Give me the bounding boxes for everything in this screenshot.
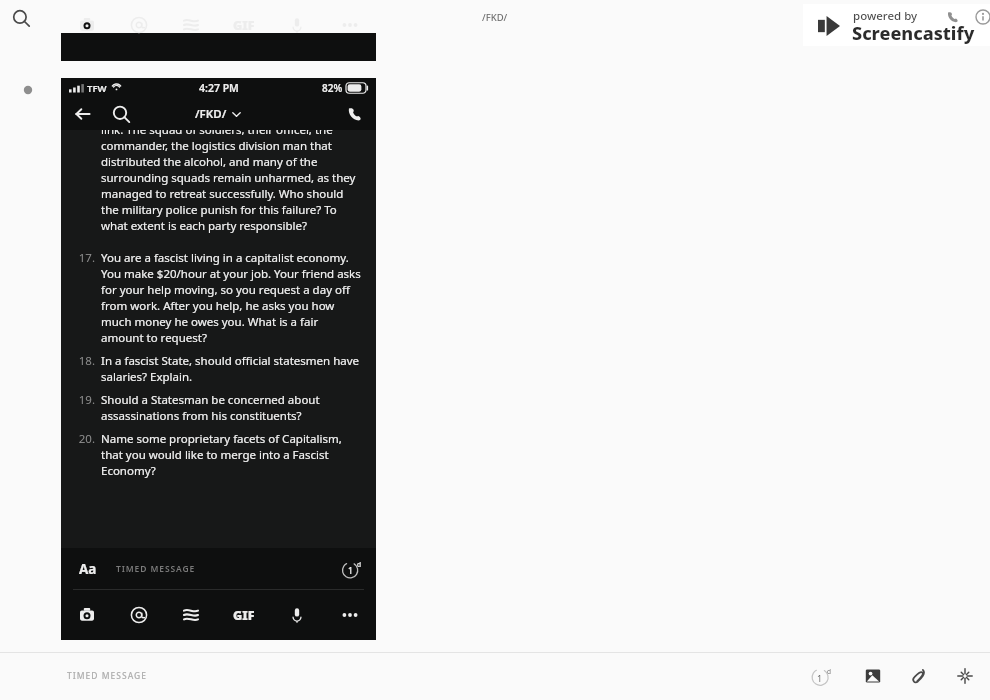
button[interactable]: Mention bbox=[113, 590, 165, 640]
staticText: TIMED MESSAGE bbox=[116, 563, 196, 575]
button[interactable]: Voice note bbox=[270, 590, 323, 640]
staticText: GIF bbox=[233, 17, 255, 34]
staticText: 4:27 PM bbox=[199, 81, 239, 95]
staticText: d bbox=[357, 560, 362, 569]
button[interactable]: Mention bbox=[113, 11, 165, 39]
staticText: 17. bbox=[65, 250, 95, 266]
staticText: 18. bbox=[65, 353, 95, 369]
staticText: 20. bbox=[65, 431, 95, 447]
button[interactable]: GIF bbox=[217, 11, 270, 39]
staticText: Screencastify bbox=[852, 21, 975, 46]
staticText: In a fascist State, should official stat… bbox=[101, 353, 362, 385]
button[interactable]: Search bbox=[107, 97, 135, 130]
staticText: Should a Statesman be concerned about as… bbox=[101, 392, 362, 424]
button[interactable]: Back bbox=[69, 97, 97, 130]
button[interactable]: Photo bbox=[858, 661, 888, 691]
staticText: GIF bbox=[233, 607, 255, 624]
staticText: d bbox=[827, 667, 831, 676]
button[interactable]: Message timer bbox=[804, 659, 838, 693]
staticText: You are a fascist living in a capitalist… bbox=[101, 250, 362, 346]
button[interactable]: Search bbox=[8, 5, 34, 31]
staticText: 19. bbox=[65, 392, 95, 408]
button[interactable]: Attach file bbox=[904, 661, 934, 691]
staticText: TFW bbox=[87, 82, 107, 95]
staticText: 82% bbox=[322, 81, 343, 95]
button[interactable]: Camera bbox=[61, 11, 113, 39]
staticText: 1 bbox=[348, 565, 353, 577]
staticText: link. The squad of soldiers, their offic… bbox=[101, 130, 362, 234]
button[interactable]: GIF bbox=[217, 590, 270, 640]
button[interactable]: Call bbox=[342, 101, 368, 127]
button[interactable]: Voice note bbox=[270, 11, 323, 39]
staticText: powered by bbox=[853, 8, 918, 24]
staticText: TIMED MESSAGE bbox=[67, 670, 147, 682]
staticText: 1 bbox=[817, 672, 823, 684]
button[interactable]: More bbox=[323, 11, 376, 39]
staticText: Name some proprietary facets of Capitali… bbox=[101, 431, 362, 479]
button[interactable]: Stickers bbox=[165, 11, 217, 39]
button[interactable]: Effects bbox=[950, 661, 980, 691]
button[interactable]: Text style bbox=[73, 548, 103, 590]
staticText: /FKD/ bbox=[482, 11, 508, 24]
button[interactable]: More bbox=[323, 590, 376, 640]
button[interactable]: Message timer bbox=[338, 556, 364, 582]
staticText: Aa bbox=[79, 560, 97, 578]
staticText: /FKD/ bbox=[195, 106, 227, 122]
button[interactable]: Stickers bbox=[165, 590, 217, 640]
button[interactable]: Camera bbox=[61, 590, 113, 640]
button[interactable]: /FKD/ bbox=[195, 106, 242, 122]
